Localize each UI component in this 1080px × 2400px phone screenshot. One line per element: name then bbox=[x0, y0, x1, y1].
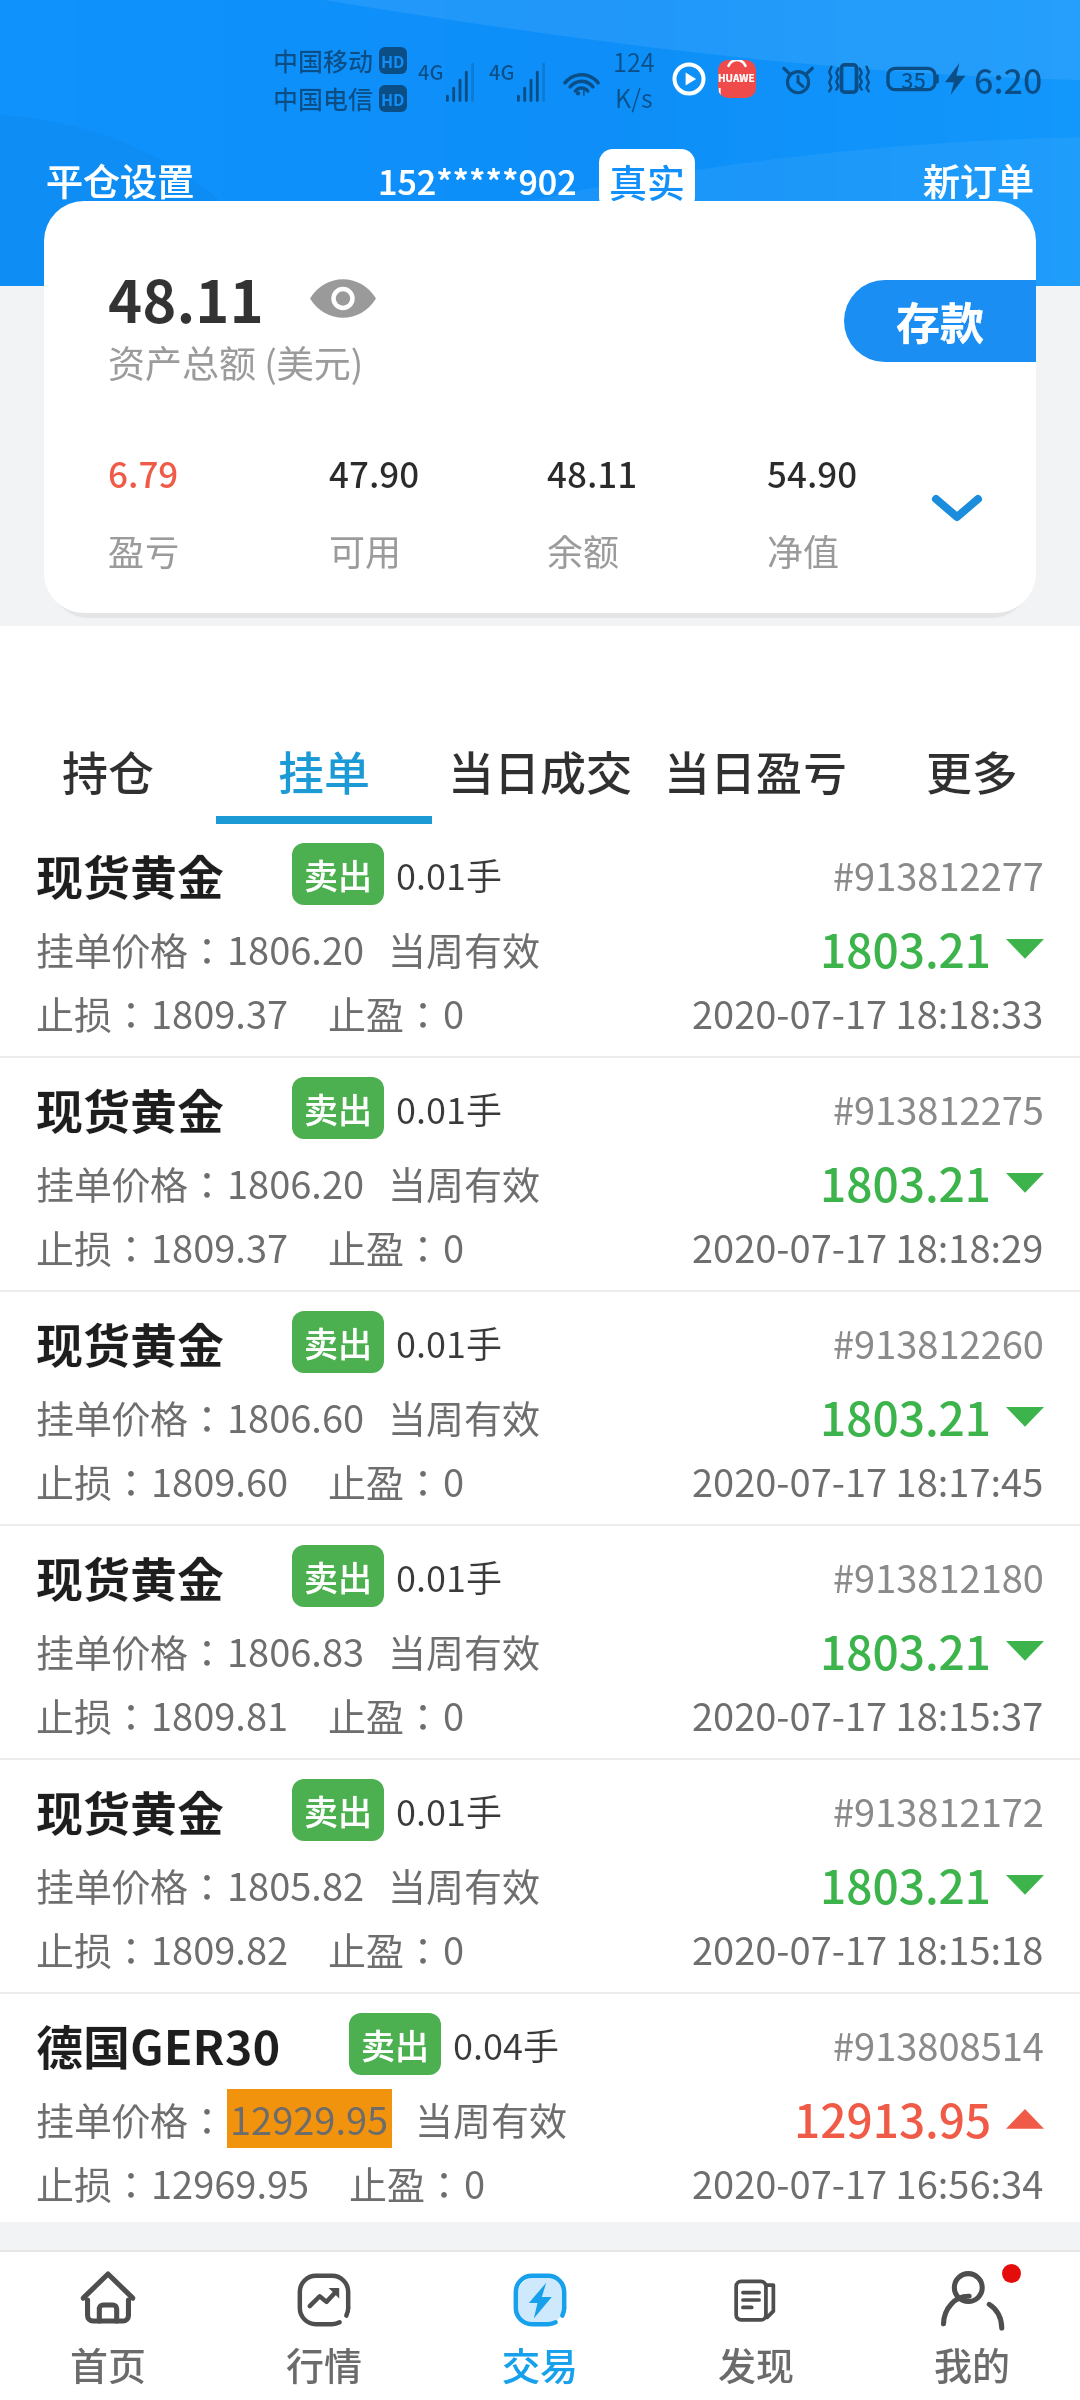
staticText: #913812275 bbox=[833, 1081, 1044, 1136]
staticText: K/s bbox=[615, 79, 653, 115]
staticText: 2020-07-17 18:17:45 bbox=[692, 1453, 1044, 1508]
button[interactable]: 挂单 bbox=[216, 626, 432, 826]
staticText: 现货黄金 bbox=[36, 1776, 224, 1844]
button[interactable]: 新订单 bbox=[923, 153, 1034, 207]
staticText: 止损： bbox=[36, 1453, 151, 1508]
staticText: 0 bbox=[464, 2155, 486, 2210]
staticText: 余额 bbox=[547, 524, 620, 576]
staticText: 挂单价格： bbox=[36, 1155, 227, 1210]
staticText: 平仓设置 bbox=[46, 153, 194, 207]
staticText: 4G bbox=[489, 57, 515, 86]
staticText: 1803.21 bbox=[820, 1851, 992, 1918]
staticText: 资产总额 (美元) bbox=[108, 335, 364, 389]
staticText: 6.79 bbox=[108, 447, 179, 498]
staticText: 止盈： bbox=[328, 1921, 443, 1976]
staticText: 124 bbox=[613, 43, 655, 79]
staticText: 2020-07-17 18:15:37 bbox=[692, 1687, 1044, 1742]
staticText: 12969.95 bbox=[151, 2155, 310, 2210]
button[interactable]: 存款 bbox=[844, 280, 1036, 362]
staticText: 止损： bbox=[36, 1219, 151, 1274]
staticText: 6:20 bbox=[974, 55, 1043, 104]
staticText: 首页 bbox=[70, 2336, 147, 2391]
staticText: 当日成交 bbox=[448, 737, 632, 804]
staticText: 0 bbox=[443, 985, 465, 1040]
staticText: #913808514 bbox=[833, 2017, 1044, 2072]
staticText: 1809.60 bbox=[151, 1453, 289, 1508]
button[interactable]: 交易 bbox=[432, 2252, 648, 2400]
staticText: 挂单 bbox=[278, 737, 370, 804]
button[interactable]: 当日盈亏 bbox=[648, 626, 864, 826]
button[interactable]: 我的 bbox=[864, 2252, 1080, 2400]
staticText: 更多 bbox=[926, 737, 1018, 804]
staticText: 2020-07-17 16:56:34 bbox=[692, 2155, 1044, 2210]
staticText: 35 bbox=[901, 63, 927, 95]
staticText: 止损： bbox=[36, 1687, 151, 1742]
staticText: 1806.83 bbox=[227, 1623, 365, 1678]
staticText: 0.04手 bbox=[453, 2018, 559, 2070]
staticText: 当日盈亏 bbox=[664, 737, 848, 804]
staticText: 当周有效 bbox=[415, 2091, 568, 2146]
staticText: 0 bbox=[443, 1453, 465, 1508]
button[interactable]: 更多 bbox=[864, 626, 1080, 826]
button[interactable]: 152*****902 bbox=[378, 149, 695, 211]
staticText: 1806.20 bbox=[227, 921, 365, 976]
button[interactable]: 现货黄金 bbox=[0, 1058, 1080, 1290]
button[interactable]: 首页 bbox=[0, 2252, 216, 2400]
staticText: 1805.82 bbox=[227, 1857, 365, 1912]
staticText: 卖出 bbox=[304, 1084, 372, 1133]
staticText: 1809.37 bbox=[151, 1219, 289, 1274]
staticText: 1806.60 bbox=[227, 1389, 365, 1444]
staticText: 挂单价格： bbox=[36, 2091, 227, 2146]
staticText: 当周有效 bbox=[388, 1155, 541, 1210]
button[interactable]: 德国GER30 bbox=[0, 1994, 1080, 2226]
button[interactable]: 当日成交 bbox=[432, 626, 648, 826]
staticText: 0 bbox=[443, 1687, 465, 1742]
staticText: 止盈： bbox=[349, 2155, 464, 2210]
staticText: 止损： bbox=[36, 2155, 151, 2210]
button[interactable]: 持仓 bbox=[0, 626, 216, 826]
staticText: #913812277 bbox=[833, 847, 1044, 902]
staticText: 我的 bbox=[934, 2336, 1011, 2391]
staticText: 4G bbox=[418, 57, 444, 86]
staticText: 1809.37 bbox=[151, 985, 289, 1040]
staticText: 2020-07-17 18:18:29 bbox=[692, 1219, 1044, 1274]
button[interactable]: 发现 bbox=[648, 2252, 864, 2400]
staticText: 12913.95 bbox=[794, 2085, 992, 2152]
staticText: 挂单价格： bbox=[36, 1389, 227, 1444]
staticText: 现货黄金 bbox=[36, 840, 224, 908]
staticText: 0.01手 bbox=[396, 1082, 502, 1134]
staticText: 2020-07-17 18:15:18 bbox=[692, 1921, 1044, 1976]
button[interactable]: 现货黄金 bbox=[0, 824, 1080, 1056]
staticText: 止盈： bbox=[328, 1453, 443, 1508]
staticText: 现货黄金 bbox=[36, 1542, 224, 1610]
staticText: 挂单价格： bbox=[36, 921, 227, 976]
button[interactable]: 行情 bbox=[216, 2252, 432, 2400]
staticText: 新订单 bbox=[923, 153, 1034, 207]
button[interactable]: 隐藏资产 bbox=[301, 268, 385, 328]
staticText: 中国电信 bbox=[273, 80, 374, 116]
staticText: 0.01手 bbox=[396, 1784, 502, 1836]
staticText: 1809.81 bbox=[151, 1687, 289, 1742]
staticText: 可用 bbox=[329, 524, 402, 576]
staticText: 德国GER30 bbox=[36, 2010, 281, 2078]
button[interactable]: 展开更多 bbox=[917, 444, 1036, 592]
staticText: 0 bbox=[443, 1219, 465, 1274]
staticText: 2020-07-17 18:18:33 bbox=[692, 985, 1044, 1040]
staticText: 0.01手 bbox=[396, 1550, 502, 1602]
staticText: 1803.21 bbox=[820, 1617, 992, 1684]
staticText: 0.01手 bbox=[396, 1316, 502, 1368]
button[interactable]: 现货黄金 bbox=[0, 1292, 1080, 1524]
staticText: 1809.82 bbox=[151, 1921, 289, 1976]
staticText: #913812172 bbox=[833, 1783, 1044, 1838]
staticText: #913812260 bbox=[833, 1315, 1044, 1370]
button[interactable]: 现货黄金 bbox=[0, 1526, 1080, 1758]
staticText: 持仓 bbox=[62, 737, 154, 804]
button[interactable]: 现货黄金 bbox=[0, 1760, 1080, 1992]
staticText: 48.11 bbox=[547, 447, 638, 498]
staticText: 1803.21 bbox=[820, 1149, 992, 1216]
staticText: 1803.21 bbox=[820, 1383, 992, 1450]
staticText: HD bbox=[381, 87, 405, 110]
button[interactable]: 平仓设置 bbox=[46, 153, 194, 207]
staticText: 交易 bbox=[502, 2336, 579, 2391]
staticText: 止损： bbox=[36, 985, 151, 1040]
